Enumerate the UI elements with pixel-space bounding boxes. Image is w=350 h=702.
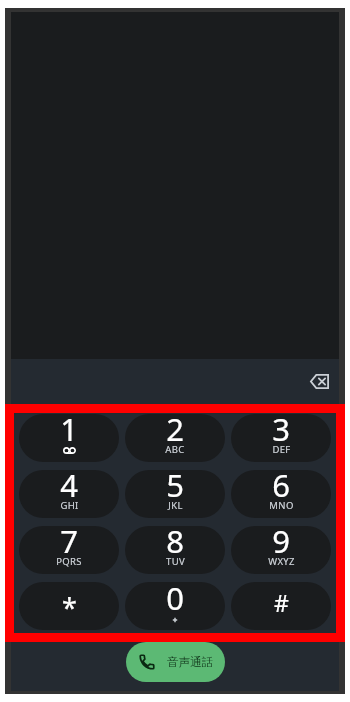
button[interactable]: Backspace: [301, 363, 337, 399]
staticText: 0: [166, 582, 184, 619]
button[interactable]: 4: [19, 470, 119, 518]
staticText: WXYZ: [268, 555, 295, 568]
staticText: JKL: [168, 499, 183, 512]
button[interactable]: 音声通話: [126, 642, 225, 682]
staticText: 2: [166, 414, 184, 450]
button[interactable]: *: [19, 582, 119, 630]
staticText: *: [62, 589, 77, 626]
staticText: 6: [272, 470, 290, 506]
staticText: 9: [272, 526, 290, 562]
staticText: 8: [166, 526, 184, 562]
staticText: TUV: [166, 555, 185, 568]
button[interactable]: 1: [19, 414, 119, 462]
staticText: PQRS: [56, 555, 82, 568]
button[interactable]: 3: [231, 414, 331, 462]
staticText: 音声通話: [167, 655, 214, 670]
staticText: GHI: [60, 499, 79, 512]
staticText: 5: [166, 470, 184, 506]
button[interactable]: #: [231, 582, 331, 630]
button[interactable]: 6: [231, 470, 331, 518]
staticText: DEF: [272, 443, 291, 456]
button[interactable]: 2: [125, 414, 225, 462]
staticText: MNO: [269, 499, 294, 512]
button[interactable]: 5: [125, 470, 225, 518]
staticText: #: [274, 587, 289, 618]
staticText: ABC: [165, 443, 185, 456]
staticText: 4: [60, 470, 78, 506]
button[interactable]: 7: [19, 526, 119, 574]
button[interactable]: 0: [125, 582, 225, 630]
button[interactable]: 9: [231, 526, 331, 574]
button[interactable]: 8: [125, 526, 225, 574]
staticText: 1: [60, 414, 78, 450]
staticText: 7: [60, 526, 78, 562]
staticText: 3: [272, 414, 290, 450]
